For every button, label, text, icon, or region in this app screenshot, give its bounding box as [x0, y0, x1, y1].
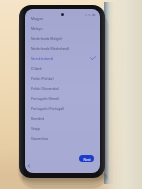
- staticText: Română: [31, 116, 45, 121]
- button[interactable]: Português (Portugal): [25, 103, 100, 113]
- staticText: Português (Portugal): [31, 106, 65, 111]
- staticText: Polski (Slovensko): [31, 86, 60, 91]
- staticText: Magyar: [31, 16, 44, 21]
- staticText: Next: [83, 157, 91, 161]
- button[interactable]: Norsk bokmål: [25, 53, 100, 63]
- button[interactable]: Next: [79, 155, 94, 162]
- button[interactable]: Melayu: [25, 23, 100, 33]
- button[interactable]: O'zbek: [25, 63, 100, 73]
- staticText: O'zbek: [31, 66, 42, 71]
- staticText: Nederlands (België): [31, 36, 63, 41]
- button[interactable]: Română: [25, 113, 100, 123]
- button[interactable]: Nederlands (België): [25, 33, 100, 43]
- button[interactable]: Magyar: [25, 13, 100, 23]
- staticText: Norsk bokmål: [31, 56, 54, 61]
- button[interactable]: Português (Brasil): [25, 93, 100, 103]
- button[interactable]: Polski (Polska): [25, 73, 100, 83]
- staticText: Slovenčina: [31, 136, 48, 141]
- staticText: Português (Brasil): [31, 96, 60, 101]
- button[interactable]: Back: [26, 163, 32, 169]
- staticText: Polski (Polska): [31, 76, 54, 81]
- button[interactable]: Shqip: [25, 123, 100, 133]
- button[interactable]: Polski (Slovensko): [25, 83, 100, 93]
- staticText: Melayu: [31, 26, 43, 31]
- button[interactable]: Slovenčina: [25, 133, 100, 143]
- staticText: Nederlands (Nederland): [31, 46, 70, 51]
- button[interactable]: Nederlands (Nederland): [25, 43, 100, 53]
- staticText: Shqip: [31, 126, 41, 131]
